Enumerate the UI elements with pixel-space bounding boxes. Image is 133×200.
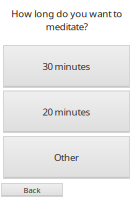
button[interactable]: Other — [3, 136, 130, 178]
staticText: Back — [23, 185, 40, 195]
staticText: How long do you want to meditate? — [11, 7, 122, 33]
staticText: Other — [54, 151, 79, 164]
staticText: 20 minutes — [42, 105, 90, 118]
button[interactable]: 30 minutes — [3, 45, 130, 87]
staticText: 30 minutes — [42, 60, 90, 73]
button[interactable]: Back — [1, 183, 63, 197]
button[interactable]: 20 minutes — [3, 90, 130, 133]
